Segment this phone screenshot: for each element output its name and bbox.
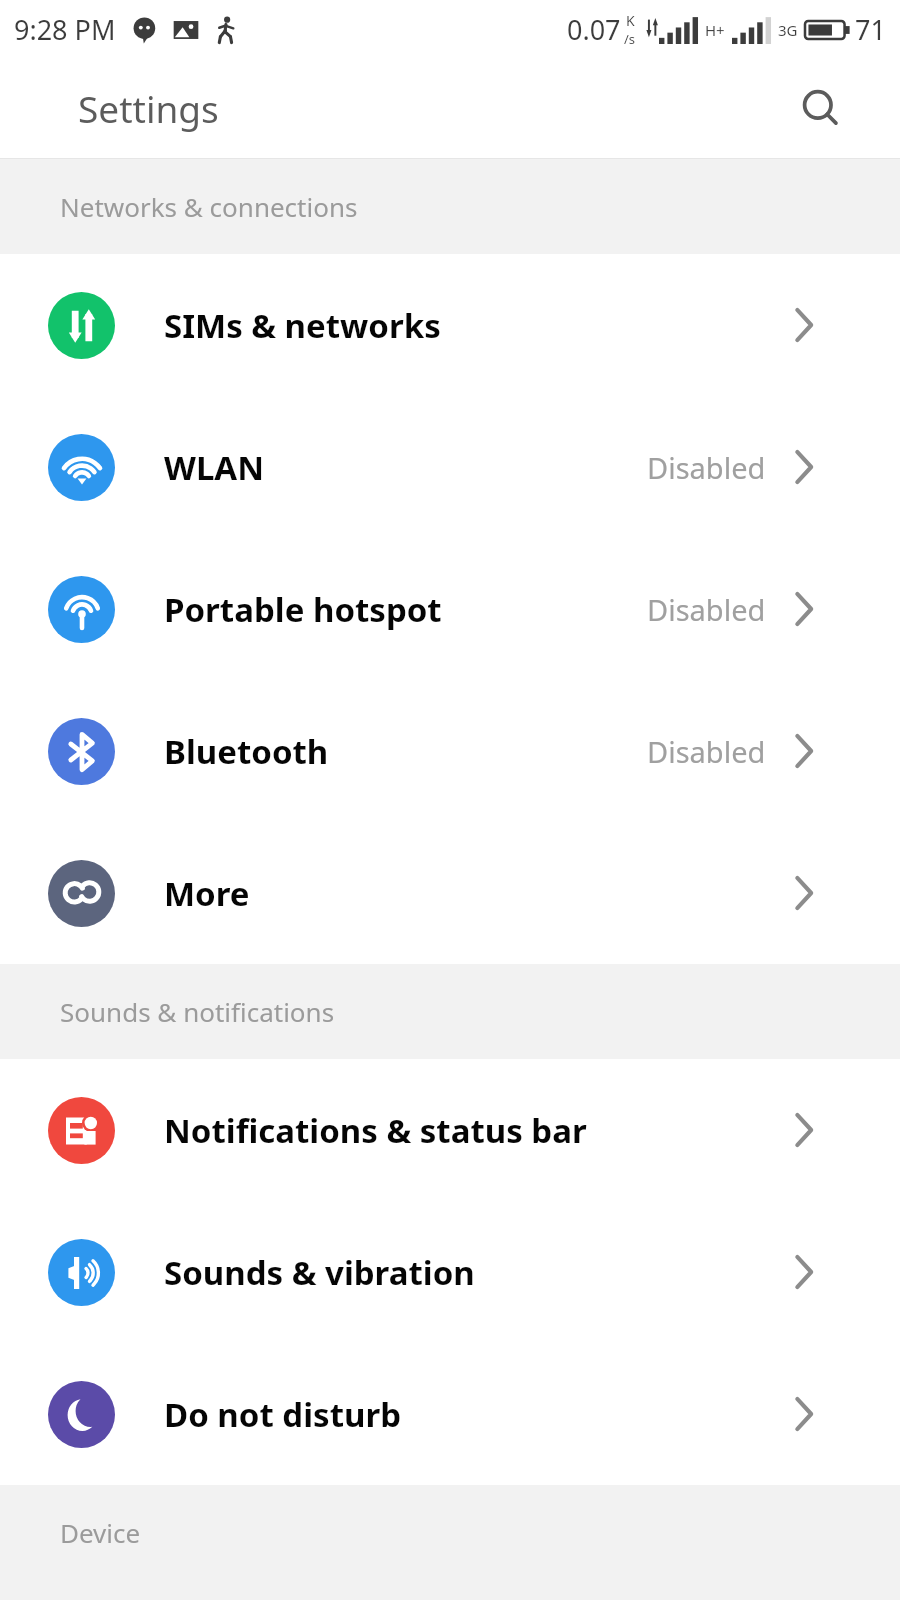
staticText: Disabled <box>647 448 766 487</box>
staticText: Do not disturb <box>164 1392 402 1437</box>
button[interactable]: Notifications & status bar <box>0 1059 900 1201</box>
staticText: Settings <box>78 83 219 133</box>
staticText: WLAN <box>164 445 265 490</box>
staticText: Device <box>60 1515 141 1550</box>
staticText: Notifications & status bar <box>164 1108 587 1153</box>
staticText: K <box>626 11 635 30</box>
staticText: 0.07 <box>567 11 621 48</box>
button[interactable]: Search <box>792 80 848 136</box>
button[interactable]: WLAN <box>0 396 900 538</box>
staticText: Bluetooth <box>164 729 329 774</box>
button[interactable]: Portable hotspot <box>0 538 900 680</box>
staticText: More <box>164 871 250 916</box>
staticText: H+ <box>705 20 725 40</box>
staticText: 71 <box>855 11 886 48</box>
staticText: 9:28 PM <box>14 11 116 48</box>
staticText: Sounds & notifications <box>60 994 335 1029</box>
staticText: Sounds & vibration <box>164 1250 475 1295</box>
staticText: 3G <box>778 20 798 40</box>
staticText: SIMs & networks <box>164 303 441 348</box>
button[interactable]: Bluetooth <box>0 680 900 822</box>
staticText: /s <box>624 30 636 48</box>
staticText: Disabled <box>647 590 766 629</box>
button[interactable]: SIMs & networks <box>0 254 900 396</box>
button[interactable]: More <box>0 822 900 964</box>
button[interactable]: Sounds & vibration <box>0 1201 900 1343</box>
staticText: Portable hotspot <box>164 587 442 632</box>
button[interactable]: Do not disturb <box>0 1343 900 1485</box>
staticText: Disabled <box>647 732 766 771</box>
staticText: Networks & connections <box>60 189 358 224</box>
